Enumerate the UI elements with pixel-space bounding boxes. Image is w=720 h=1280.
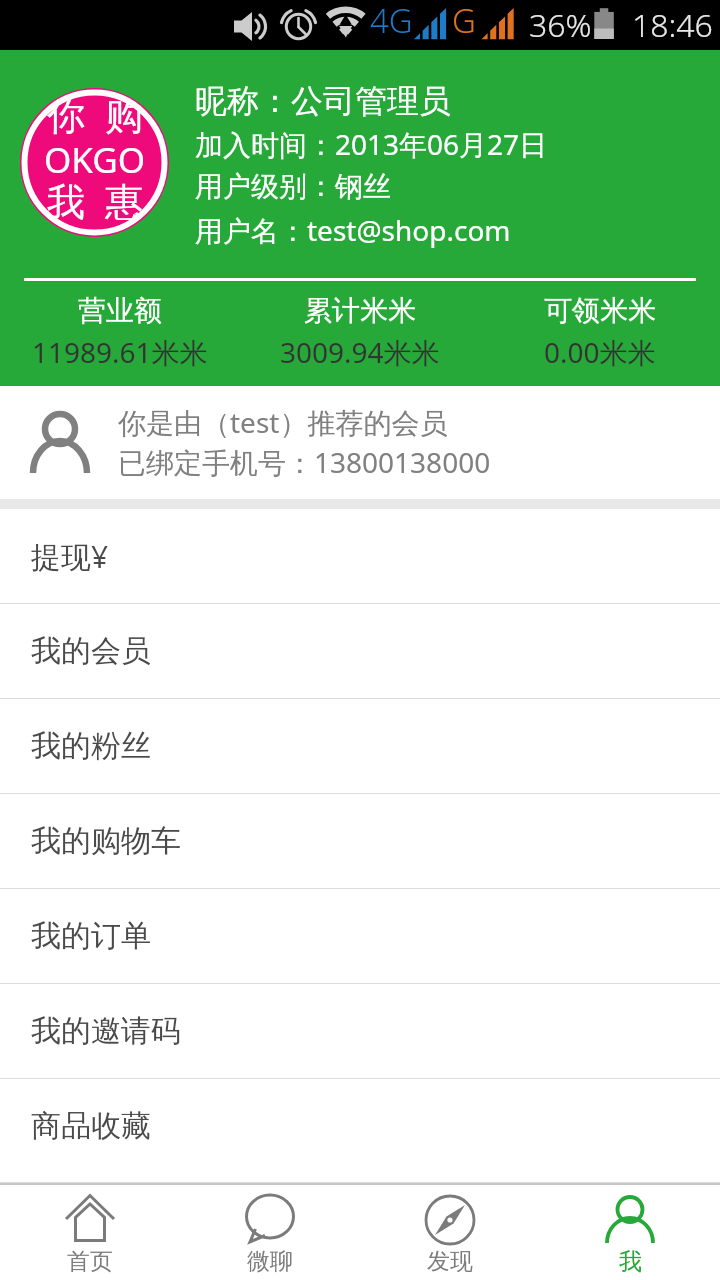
staticText: OKGO	[44, 136, 146, 178]
staticText: 微聊	[247, 1247, 293, 1276]
staticText: 我	[619, 1247, 642, 1276]
button[interactable]: 我的订单	[0, 889, 720, 983]
staticText: 加入时间：2013年06月27日	[195, 125, 548, 163]
staticText: 用户级别：钢丝	[195, 169, 391, 204]
button[interactable]: 我的购物车	[0, 794, 720, 888]
staticText: 3009.94米米	[280, 333, 440, 371]
staticText: 发现	[427, 1247, 473, 1276]
staticText: 0.00米米	[544, 333, 656, 371]
staticText: 我的购物车	[31, 822, 181, 860]
staticText: 累计米米	[304, 293, 416, 328]
button[interactable]: 我的会员	[0, 604, 720, 698]
button[interactable]: Discover	[360, 1185, 540, 1280]
button[interactable]: 营业额	[0, 293, 240, 371]
button[interactable]: Avatar	[20, 88, 169, 237]
staticText: 我的粉丝	[31, 727, 151, 765]
staticText: 我的订单	[31, 917, 151, 955]
button[interactable]: Home	[0, 1185, 180, 1280]
button[interactable]: 可领米米	[480, 293, 720, 371]
button[interactable]: Me	[540, 1185, 720, 1280]
staticText: 你购	[37, 92, 153, 136]
staticText: 昵称：公司管理员	[195, 81, 451, 121]
button[interactable]: 我的邀请码	[0, 984, 720, 1078]
button[interactable]: 我的粉丝	[0, 699, 720, 793]
button[interactable]: 你是由（test）推荐的会员	[0, 386, 720, 499]
staticText: 36%	[529, 3, 592, 47]
staticText: 我的会员	[31, 632, 151, 670]
staticText: 我惠	[37, 178, 153, 223]
staticText: G	[452, 0, 476, 43]
button[interactable]: 提现¥	[0, 509, 720, 603]
staticText: 用户名：test@shop.com	[195, 211, 511, 249]
button[interactable]: 累计米米	[240, 293, 480, 371]
staticText: 你是由（test）推荐的会员	[118, 403, 448, 441]
staticText: 提现¥	[31, 536, 109, 577]
button[interactable]: Chat	[180, 1185, 360, 1280]
button[interactable]: 商品收藏	[0, 1079, 720, 1182]
staticText: 18:46	[632, 3, 713, 47]
staticText: 首页	[67, 1247, 113, 1276]
staticText: 商品收藏	[31, 1107, 151, 1145]
staticText: 营业额	[78, 293, 162, 328]
staticText: 已绑定手机号：13800138000	[118, 443, 491, 481]
staticText: 11989.61米米	[32, 333, 208, 371]
staticText: 4G	[370, 0, 413, 43]
staticText: 可领米米	[544, 293, 656, 328]
staticText: 我的邀请码	[31, 1012, 181, 1050]
